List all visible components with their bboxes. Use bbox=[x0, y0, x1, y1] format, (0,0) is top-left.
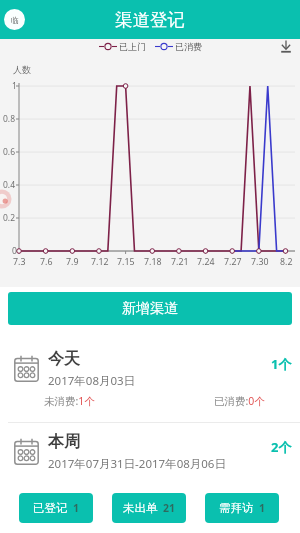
staticText: 未消费:1个 bbox=[44, 394, 95, 408]
staticText: 需拜访 bbox=[219, 501, 254, 515]
staticText: 已消费:0个 bbox=[214, 394, 265, 408]
staticText: 7.30 bbox=[251, 256, 269, 268]
staticText: 7.9 bbox=[66, 256, 79, 268]
staticText: 7.21 bbox=[171, 256, 189, 268]
staticText: 2017年08月03日 bbox=[48, 373, 136, 389]
button[interactable]: 未出单 bbox=[112, 493, 186, 523]
staticText: 1 bbox=[73, 501, 80, 515]
staticText: 临 bbox=[11, 15, 19, 25]
staticText: 已消费 bbox=[175, 41, 202, 52]
staticText: 渠道登记 bbox=[115, 9, 185, 31]
staticText: 0.8 bbox=[3, 113, 16, 125]
button[interactable]: 需拜访 bbox=[205, 493, 279, 523]
staticText: 新增渠道 bbox=[122, 300, 178, 318]
staticText: 1 bbox=[12, 80, 17, 92]
staticText: 0 bbox=[12, 245, 17, 257]
staticText: 1 bbox=[259, 501, 266, 515]
staticText: 2017年07月31日-2017年08月06日 bbox=[48, 456, 226, 472]
staticText: 7.15 bbox=[117, 256, 135, 268]
staticText: 7.18 bbox=[144, 256, 162, 268]
button[interactable]: 新增渠道 bbox=[8, 292, 292, 325]
staticText: 人数 bbox=[13, 64, 31, 75]
staticText: 已上门 bbox=[119, 41, 146, 52]
staticText: 7.3 bbox=[13, 256, 26, 268]
staticText: 0.4 bbox=[3, 179, 16, 191]
staticText: 7.6 bbox=[40, 256, 53, 268]
staticText: 未出单 bbox=[123, 501, 158, 515]
staticText: 8.2 bbox=[280, 256, 293, 268]
staticText: 0.6 bbox=[3, 146, 16, 158]
staticText: 7.12 bbox=[91, 256, 109, 268]
staticText: 7.27 bbox=[224, 256, 242, 268]
staticText: 21 bbox=[163, 501, 176, 515]
button[interactable]: 今天 bbox=[0, 340, 300, 422]
staticText: 本周 bbox=[48, 432, 80, 452]
button[interactable]: Profile bbox=[4, 9, 25, 30]
staticText: 7.24 bbox=[197, 256, 215, 268]
staticText: 1个 bbox=[271, 355, 292, 373]
staticText: 今天 bbox=[48, 349, 80, 369]
button[interactable]: Download bbox=[278, 38, 294, 54]
staticText: 已登记 bbox=[33, 501, 68, 515]
staticText: 0.2 bbox=[3, 212, 16, 224]
staticText: 2个 bbox=[271, 438, 292, 456]
button[interactable]: 本周 bbox=[0, 423, 300, 505]
button[interactable]: 已登记 bbox=[19, 493, 93, 523]
